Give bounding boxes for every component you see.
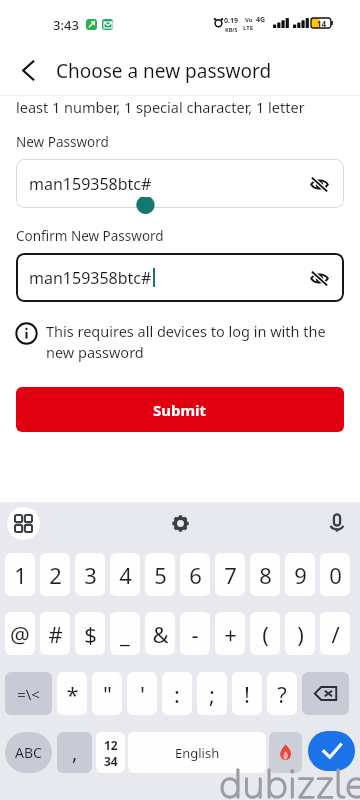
button[interactable]: Show password: [306, 265, 332, 291]
staticText: 4: [119, 560, 132, 590]
staticText: 0: [329, 560, 342, 590]
button[interactable]: ,: [57, 732, 92, 773]
staticText: ;: [209, 679, 215, 709]
staticText: 4G: [256, 15, 266, 25]
button[interactable]: 7: [215, 553, 245, 596]
button[interactable]: 8: [250, 553, 280, 596]
button[interactable]: Voice input: [323, 509, 351, 537]
staticText: 8: [259, 560, 272, 590]
staticText: ": [103, 679, 112, 709]
staticText: ABC: [15, 743, 42, 762]
button[interactable]: #: [40, 612, 70, 655]
button[interactable]: 4: [110, 553, 140, 596]
button[interactable]: 2: [40, 553, 70, 596]
button[interactable]: *: [57, 672, 87, 715]
button[interactable]: +: [215, 612, 245, 655]
staticText: 2: [49, 560, 62, 590]
button[interactable]: 6: [180, 553, 210, 596]
button[interactable]: =\<: [5, 672, 52, 715]
staticText: $: [84, 619, 97, 649]
button[interactable]: (: [250, 612, 280, 655]
button[interactable]: Enter: [308, 731, 355, 771]
button[interactable]: ?: [267, 672, 297, 715]
staticText: ): [297, 619, 304, 649]
button[interactable]: $: [75, 612, 105, 655]
staticText: 12: [104, 737, 118, 753]
button[interactable]: ': [127, 672, 157, 715]
staticText: =\<: [17, 684, 40, 704]
button[interactable]: man159358btc#: [16, 253, 344, 302]
staticText: New Password: [16, 133, 109, 151]
staticText: !: [244, 679, 250, 709]
button[interactable]: 1: [5, 553, 35, 596]
staticText: -: [191, 619, 199, 649]
button[interactable]: :: [162, 672, 192, 715]
button[interactable]: Settings: [166, 509, 194, 537]
staticText: _: [120, 619, 130, 649]
staticText: 9: [294, 560, 307, 590]
button[interactable]: Keyboard apps: [7, 507, 40, 540]
staticText: *: [66, 679, 79, 709]
button[interactable]: 12: [96, 732, 125, 773]
button[interactable]: ): [285, 612, 315, 655]
staticText: :: [174, 679, 180, 709]
staticText: 5: [154, 560, 167, 590]
button[interactable]: /: [320, 612, 350, 655]
staticText: Confirm New Password: [16, 227, 164, 245]
staticText: This requires all devices to log in with…: [46, 321, 342, 363]
button[interactable]: 9: [285, 553, 315, 596]
button[interactable]: 5: [145, 553, 175, 596]
staticText: Choose a new password: [56, 58, 272, 84]
staticText: &: [152, 619, 169, 649]
button[interactable]: English: [128, 732, 266, 773]
button[interactable]: Back: [6, 48, 50, 92]
staticText: 14: [317, 18, 327, 28]
staticText: (: [262, 619, 269, 649]
staticText: man159358btc#: [29, 267, 152, 289]
button[interactable]: ;: [197, 672, 227, 715]
staticText: +: [224, 619, 237, 649]
staticText: @: [10, 619, 30, 649]
button[interactable]: man159358btc#: [16, 159, 344, 208]
button[interactable]: 3: [75, 553, 105, 596]
button[interactable]: -: [180, 612, 210, 655]
staticText: English: [175, 744, 220, 762]
button[interactable]: Sticker: [269, 732, 302, 773]
staticText: 3:43: [53, 16, 79, 34]
button[interactable]: _: [110, 612, 140, 655]
staticText: 6: [189, 560, 202, 590]
staticText: dubizzle: [219, 757, 360, 800]
button[interactable]: @: [5, 612, 35, 655]
button[interactable]: Submit: [16, 387, 344, 432]
staticText: KB/S: [225, 26, 238, 33]
staticText: 3: [84, 560, 97, 590]
staticText: 7: [224, 560, 237, 590]
staticText: Submit: [153, 400, 207, 420]
staticText: man159358btc#: [29, 173, 152, 195]
button[interactable]: !: [232, 672, 262, 715]
staticText: 34: [104, 753, 118, 769]
button[interactable]: Show password: [306, 171, 332, 197]
button[interactable]: Backspace: [302, 672, 349, 715]
button[interactable]: ": [92, 672, 122, 715]
staticText: 0.19: [224, 16, 238, 26]
staticText: /: [331, 619, 340, 649]
staticText: ?: [277, 679, 287, 709]
staticText: ,: [72, 739, 78, 766]
staticText: Vo: [245, 16, 253, 24]
staticText: LTE: [243, 24, 254, 32]
staticText: least 1 number, 1 special character, 1 l…: [16, 97, 305, 117]
button[interactable]: &: [145, 612, 175, 655]
staticText: 1: [14, 560, 27, 590]
staticText: #: [48, 619, 63, 649]
staticText: ': [140, 679, 145, 709]
button[interactable]: ABC: [5, 732, 52, 773]
button[interactable]: 0: [320, 553, 350, 596]
